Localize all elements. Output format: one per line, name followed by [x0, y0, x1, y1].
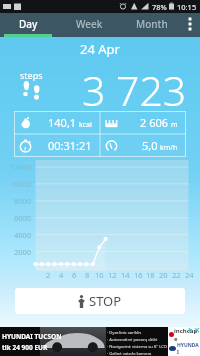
- staticText: 10000: [10, 179, 32, 189]
- staticText: 10:15: [177, 2, 197, 12]
- staticText: km/h: [160, 143, 178, 153]
- staticText: tik 24 900 EUR: [2, 343, 48, 352]
- staticText: Day: [19, 17, 38, 31]
- button[interactable]: More options: [180, 13, 200, 37]
- staticText: Month: [136, 17, 168, 31]
- staticText: · Dyzelinis variklis: [107, 330, 142, 336]
- staticText: 5,0: [142, 138, 158, 153]
- staticText: 12000: [10, 162, 32, 172]
- staticText: 8: [85, 270, 90, 280]
- button[interactable]: Week: [59, 13, 120, 37]
- staticText: kcal: [79, 120, 92, 130]
- staticText: STOP: [89, 292, 122, 310]
- staticText: 12: [108, 270, 117, 280]
- staticText: 8000: [14, 196, 32, 206]
- staticText: 2: [46, 270, 51, 280]
- staticText: · Galinė vaizdo kamera: [107, 351, 152, 356]
- staticText: m: [171, 120, 178, 130]
- staticText: 78%: [152, 2, 167, 12]
- staticText: inchcape: [174, 327, 200, 341]
- staticText: 140,1: [48, 115, 77, 130]
- staticText: 22: [172, 270, 181, 280]
- staticText: 4: [59, 270, 64, 280]
- button[interactable]: HYUNDAI TUCSON: [0, 327, 200, 356]
- staticText: steps: [20, 69, 43, 81]
- staticText: · Automatinė pavarų dėžė: [107, 337, 158, 343]
- staticText: 10: [95, 270, 104, 280]
- staticText: HYUNDAI: [177, 342, 200, 356]
- staticText: 2 606: [140, 115, 169, 130]
- staticText: 6000: [14, 213, 32, 223]
- staticText: 18: [146, 270, 155, 280]
- button[interactable]: Month: [121, 13, 182, 37]
- button[interactable]: STOP: [15, 288, 185, 314]
- staticText: 4000: [14, 230, 32, 240]
- staticText: 723: [116, 62, 187, 118]
- staticText: 24: [185, 270, 194, 280]
- staticText: 6: [72, 270, 77, 280]
- staticText: 2000: [14, 247, 32, 257]
- staticText: HYUNDAI TUCSON: [2, 332, 62, 341]
- staticText: Week: [76, 17, 103, 31]
- staticText: 3: [82, 62, 106, 118]
- staticText: 14: [121, 270, 130, 280]
- button[interactable]: Day: [0, 13, 57, 37]
- staticText: 20: [159, 270, 168, 280]
- staticText: · Navigacinė sistema su 8" LCD ekranu: [107, 344, 182, 350]
- staticText: 00:31:21: [48, 138, 92, 153]
- staticText: 16: [134, 270, 143, 280]
- staticText: 24 Apr: [80, 40, 120, 58]
